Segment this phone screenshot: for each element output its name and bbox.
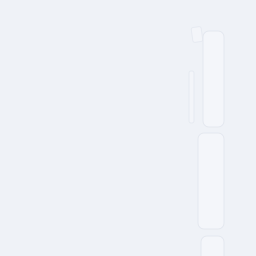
button[interactable]: Card — [201, 236, 224, 256]
button[interactable]: Badge — [192, 27, 202, 42]
